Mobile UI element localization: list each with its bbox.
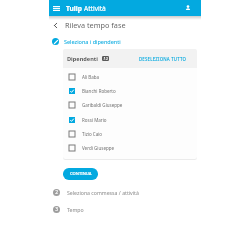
staticText: Tulip [66,4,84,13]
button[interactable]: 3 [49,206,201,213]
button[interactable]: Garibaldi Giuseppe [63,98,197,112]
staticText: Ali Baba [82,74,100,80]
staticText: Seleziona commessa / attività [67,189,139,196]
button[interactable]: Rossi Mario [63,113,197,127]
staticText: Rossi Mario [82,117,107,123]
staticText: Seleziona i dipendenti [64,38,121,45]
button[interactable]: Bianchi Roberto [63,84,197,98]
button[interactable]: Menu [50,0,63,16]
staticText: Dipendenti [67,55,98,63]
staticText: Verdi Giuseppe [82,145,114,151]
staticText: Tizio Caio [82,131,103,137]
staticText: Garibaldi Giuseppe [82,102,123,108]
button[interactable]: DESELEZIONA TUTTO [136,54,190,64]
staticText: 2 [106,56,108,61]
staticText: Bianchi Roberto [82,88,116,94]
staticText: Tempo [67,206,84,213]
button[interactable]: Ali Baba [63,70,197,84]
button[interactable]: Back [51,21,60,30]
staticText: Rileva tempo fase [65,20,126,30]
button[interactable]: Verdi Giuseppe [63,141,197,155]
staticText: 2 [55,189,58,196]
button[interactable]: Account [181,0,195,16]
button[interactable]: 2 [49,189,201,196]
staticText: 3 [55,206,58,213]
button[interactable]: Tizio Caio [63,127,197,141]
staticText: Attività [84,4,106,13]
staticText: CONTINUA [70,171,92,177]
button[interactable]: CONTINUA [63,168,98,180]
staticText: DESELEZIONA TUTTO [139,56,187,62]
